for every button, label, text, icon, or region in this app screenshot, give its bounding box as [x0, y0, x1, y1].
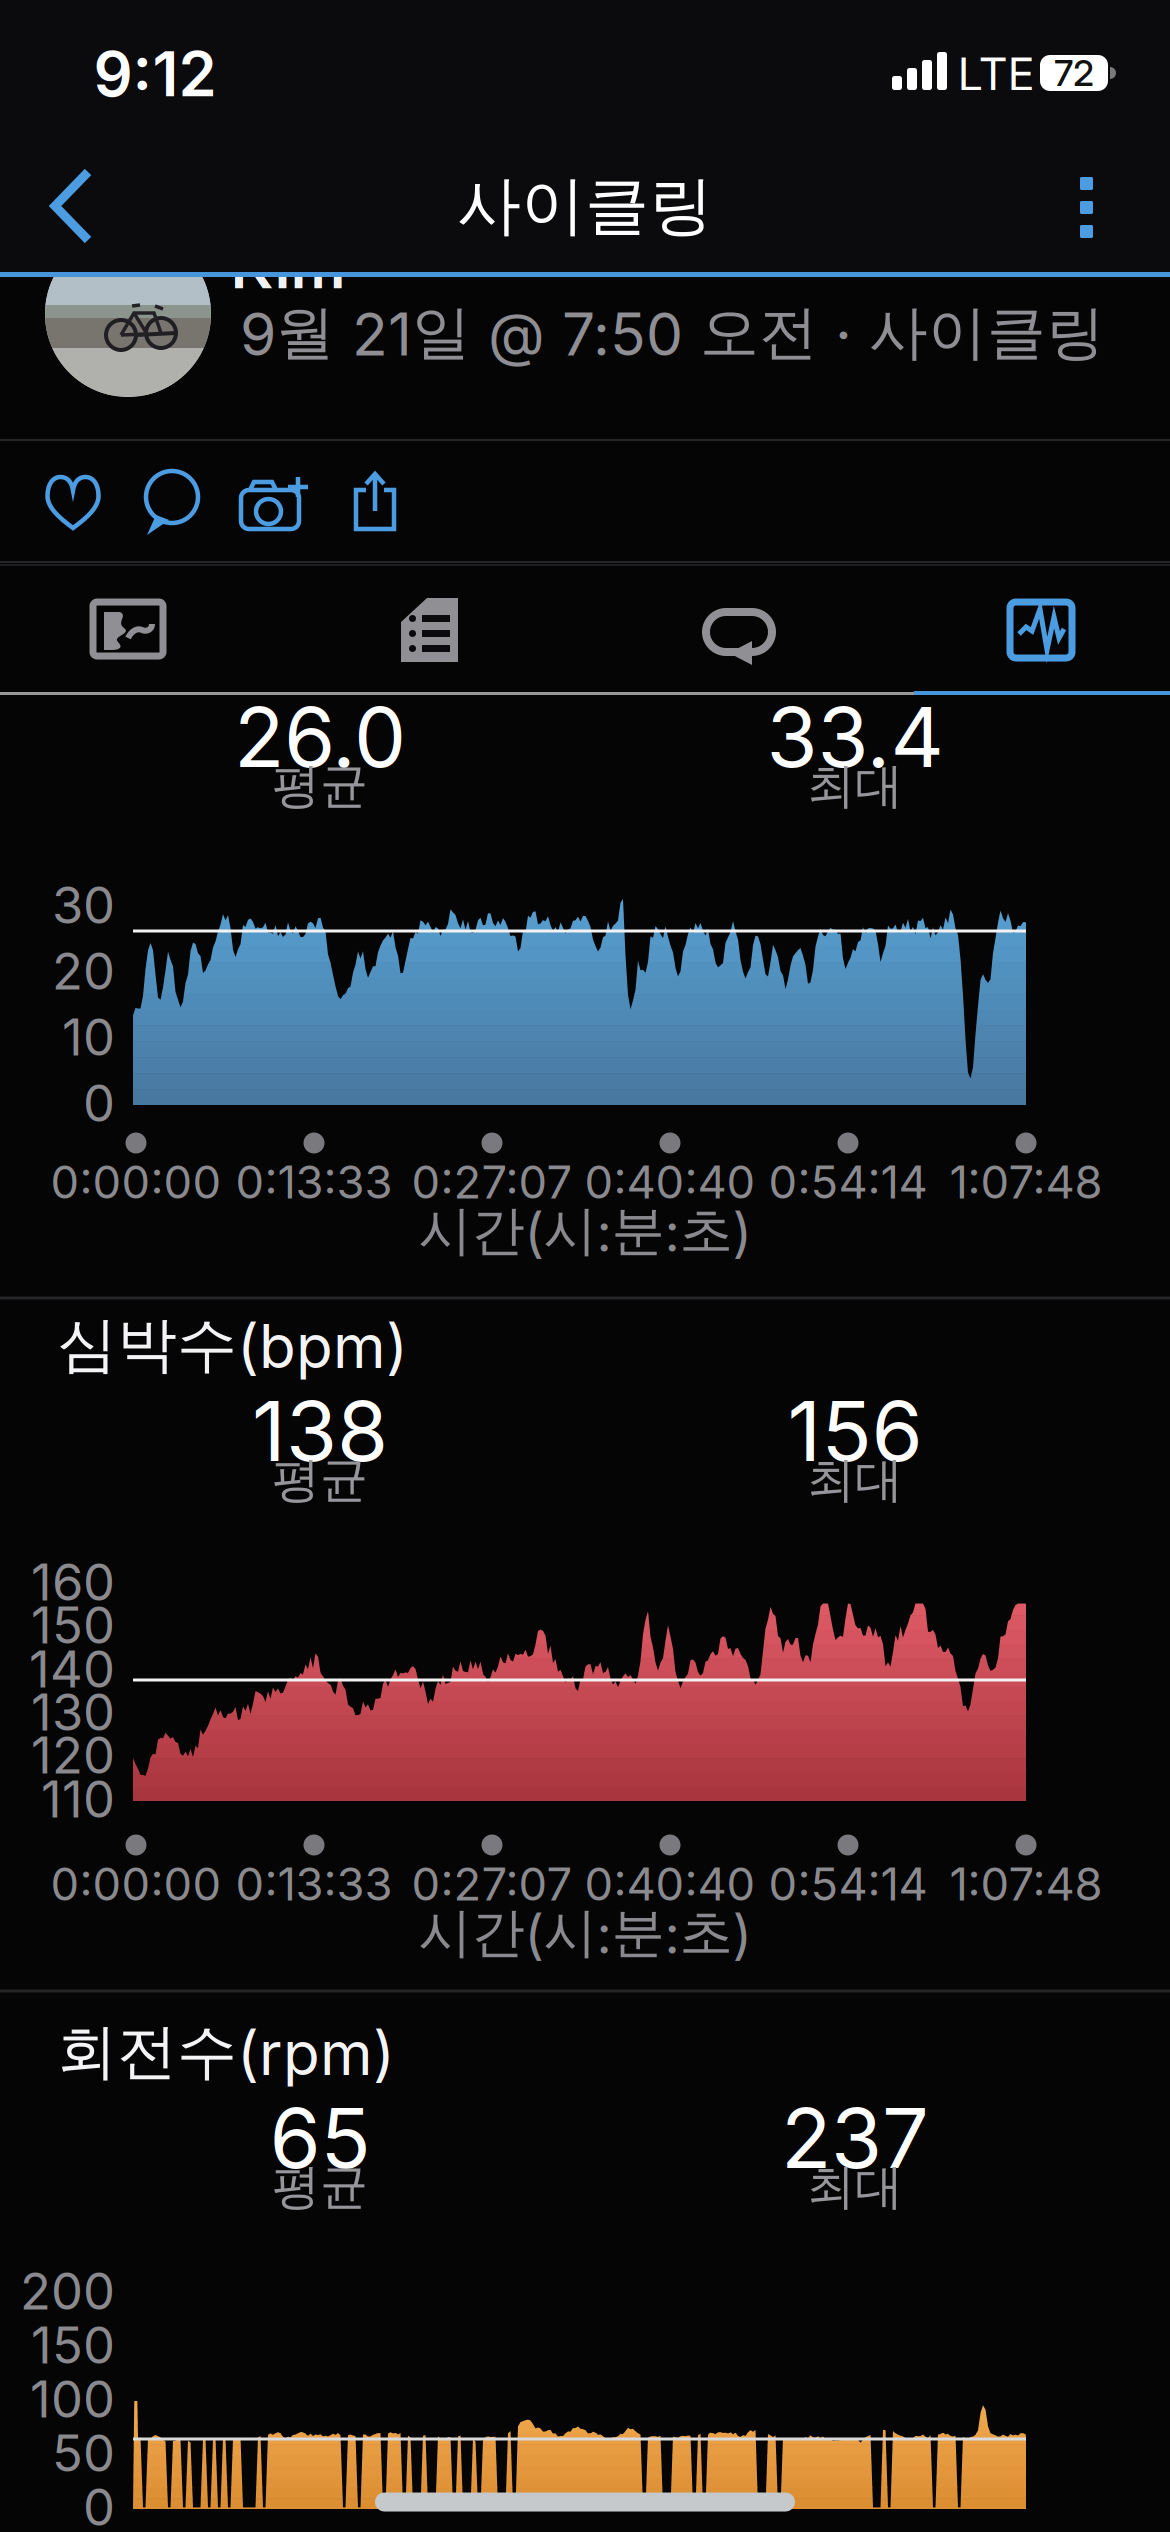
button[interactable]: Comment	[135, 461, 209, 543]
staticText: 시간(시:분:초)	[418, 1197, 751, 1265]
staticText: 156	[787, 1381, 922, 1481]
staticText: 심박수(bpm)	[57, 1307, 408, 1383]
staticText: 110	[41, 1768, 115, 1830]
staticText: 0:13:33	[235, 1155, 392, 1209]
staticText: 26.0	[234, 687, 406, 787]
staticText: 50	[52, 2422, 115, 2484]
staticText: 237	[781, 2088, 929, 2188]
staticText: 0	[83, 2476, 115, 2532]
staticText: 평균	[272, 1450, 368, 1510]
staticText: 회전수(rpm)	[57, 2014, 395, 2090]
button[interactable]: Charts	[877, 565, 1169, 697]
staticText: 최대	[807, 1450, 903, 1510]
staticText: 시간(시:분:초)	[418, 1899, 751, 1967]
staticText: 9:12	[93, 37, 216, 111]
button[interactable]: Like	[36, 466, 110, 540]
staticText: 최대	[807, 756, 903, 816]
button[interactable]: Share	[340, 462, 410, 542]
staticText: 150	[31, 1594, 115, 1656]
staticText: 33.4	[766, 687, 943, 787]
staticText: 0:40:40	[584, 1155, 755, 1209]
button[interactable]: Add Photo	[232, 468, 316, 538]
staticText: 평균	[272, 2157, 368, 2217]
button[interactable]: More	[1041, 150, 1131, 262]
button[interactable]: Details	[292, 565, 584, 697]
staticText: 0:00:00	[50, 1857, 221, 1911]
staticText: 0	[83, 1072, 115, 1134]
staticText: 9월 21일 @ 7:50 오전 · 사이클링	[240, 296, 1105, 370]
staticText: 20	[52, 940, 115, 1002]
staticText: 1:07:48	[949, 1155, 1102, 1209]
staticText: 0:27:07	[411, 1155, 572, 1209]
staticText: 120	[31, 1724, 115, 1786]
staticText: 150	[31, 2314, 115, 2376]
staticText: LTE	[957, 47, 1034, 101]
staticText: Kim	[230, 229, 345, 303]
staticText: 0:54:14	[768, 1857, 927, 1911]
staticText: 30	[52, 874, 115, 936]
button[interactable]: Map	[0, 565, 292, 697]
staticText: 160	[31, 1551, 115, 1613]
staticText: 0:00:00	[50, 1155, 221, 1209]
staticText: 0:40:40	[584, 1857, 755, 1911]
staticText: 0:13:33	[235, 1857, 392, 1911]
staticText: 0:54:14	[768, 1155, 927, 1209]
staticText: 130	[31, 1681, 115, 1743]
staticText: 100	[30, 2368, 115, 2430]
staticText: 사이클링	[457, 166, 713, 246]
staticText: 140	[29, 1638, 115, 1700]
staticText: 200	[20, 2260, 115, 2322]
staticText: 138	[252, 1381, 388, 1481]
staticText: 10	[62, 1006, 115, 1068]
staticText: 1:07:48	[949, 1857, 1102, 1911]
staticText: 72	[1054, 51, 1094, 95]
staticText: 평균	[272, 756, 368, 816]
staticText: 최대	[807, 2157, 903, 2217]
staticText: 65	[269, 2088, 370, 2188]
staticText: 0:27:07	[411, 1857, 572, 1911]
button[interactable]: Back	[30, 150, 130, 262]
button[interactable]: Laps	[585, 565, 877, 697]
